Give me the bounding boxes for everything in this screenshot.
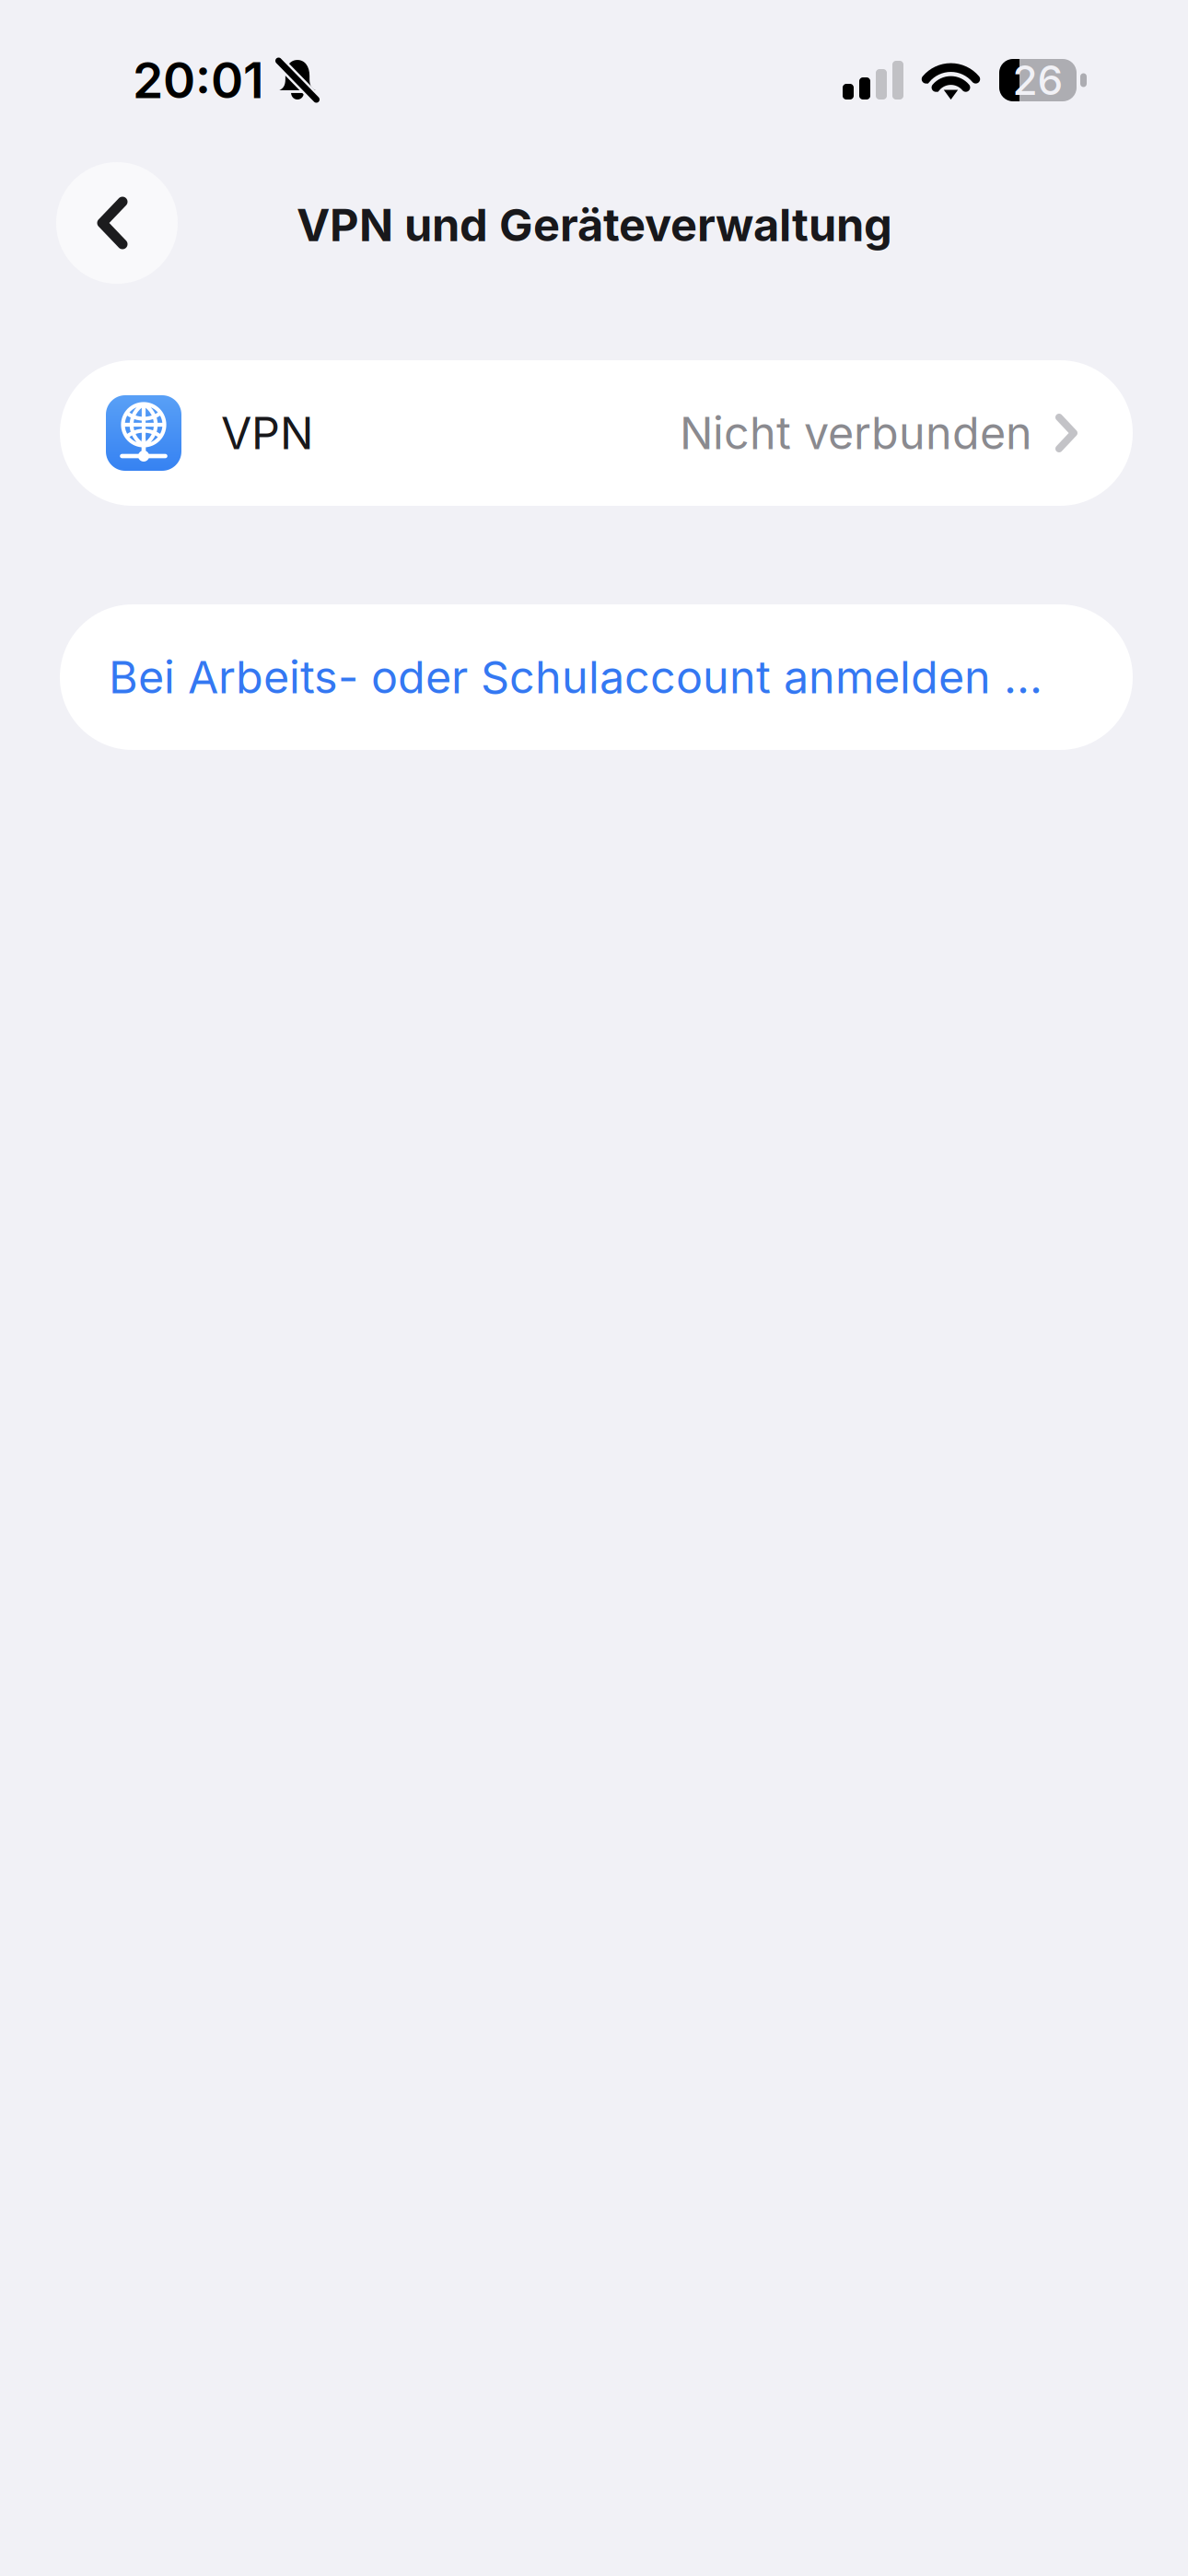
staticText: Nicht verbunden [680,406,1032,460]
staticText: Bei Arbeits- oder Schulaccount anmelden … [109,650,1042,704]
staticText: 20:01 [133,50,264,110]
button[interactable]: Back [56,162,178,284]
button[interactable]: Bei Arbeits- oder Schulaccount anmelden … [60,604,1133,750]
staticText: 26 [1013,56,1063,105]
staticText: VPN und Geräteverwaltung [297,198,892,252]
button[interactable]: VPN [60,360,1133,506]
staticText: VPN [221,406,313,460]
